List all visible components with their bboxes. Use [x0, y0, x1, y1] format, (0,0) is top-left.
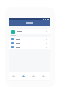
- button[interactable]: [9, 37, 50, 41]
- button[interactable]: Account: [38, 72, 48, 80]
- button[interactable]: Recent: [9, 72, 18, 80]
- button[interactable]: [9, 41, 50, 45]
- button[interactable]: Files: [18, 72, 28, 80]
- button[interactable]: Shared: [28, 72, 38, 80]
- button[interactable]: [9, 29, 50, 34]
- button[interactable]: [9, 45, 50, 49]
